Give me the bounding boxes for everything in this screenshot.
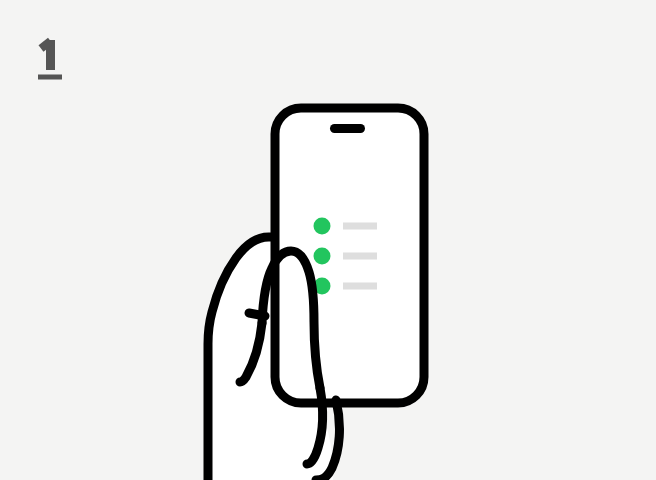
button[interactable]: Step 1 illustration: hand holding a phon… (0, 0, 656, 480)
